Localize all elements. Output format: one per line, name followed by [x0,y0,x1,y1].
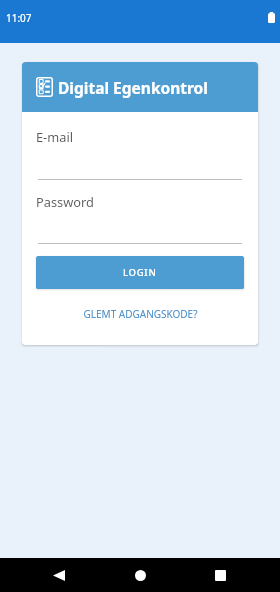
staticText: GLEMT ADGANGSKODE? [83,307,198,321]
button[interactable]: GLEMT ADGANGSKODE? [36,305,244,323]
staticText: Digital Egenkontrol [58,77,208,98]
staticText: LOGIN [123,266,157,279]
button[interactable]: Recent apps [197,558,243,592]
other: Battery [268,12,275,23]
button[interactable]: Home [117,558,163,592]
staticText: Password [36,193,94,210]
staticText: E-mail [36,128,73,145]
button[interactable]: Back [36,558,82,592]
staticText: 11:07 [6,11,32,25]
button[interactable]: LOGIN [36,256,244,289]
